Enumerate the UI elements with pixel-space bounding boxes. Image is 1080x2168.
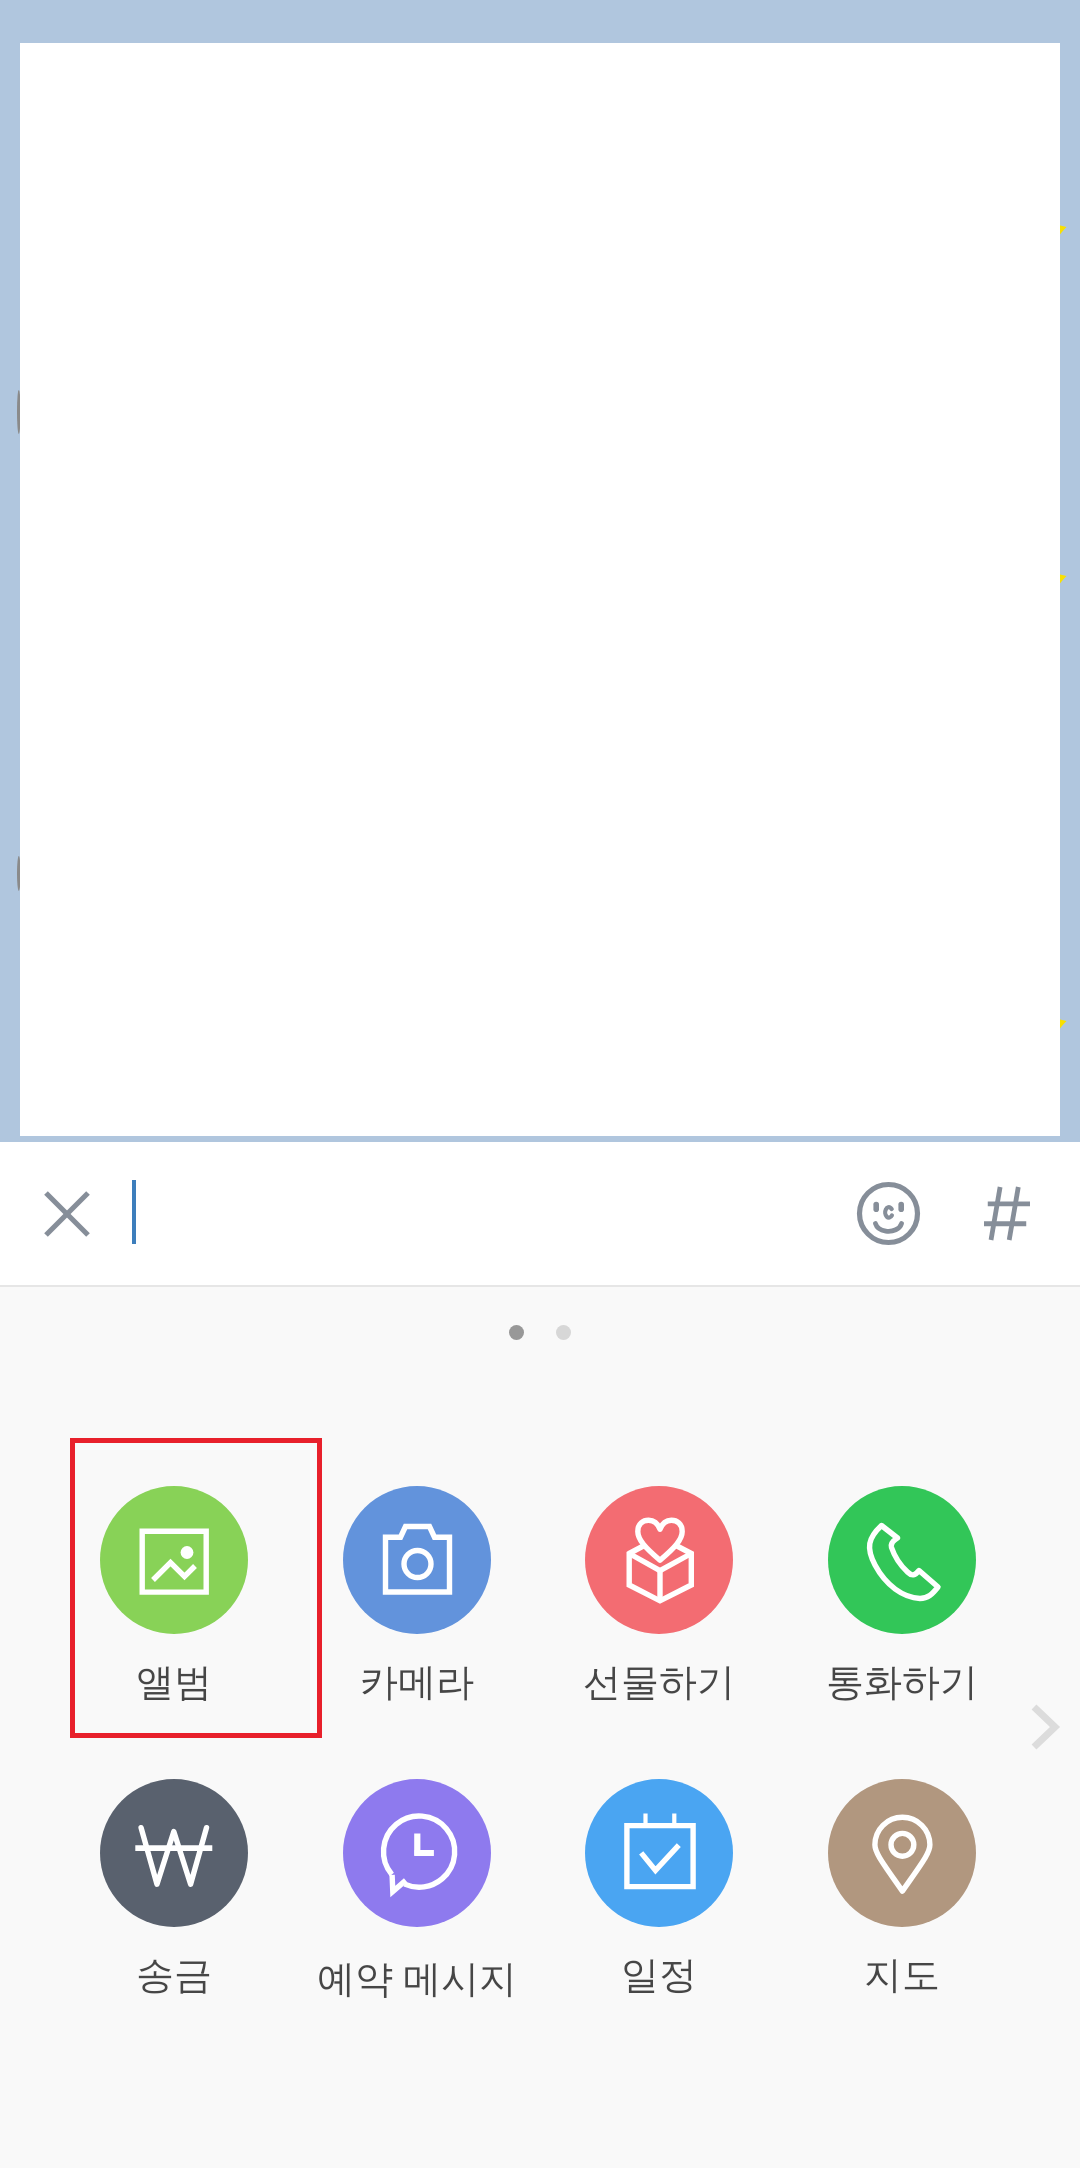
button[interactable]: 예약 메시지 [296,1779,538,2049]
staticText: 앨범 [136,1658,212,1706]
staticText: 일정 [621,1951,697,1999]
staticText: 송금 [136,1951,212,1999]
button[interactable]: 선물하기 [538,1486,780,1756]
button[interactable]: 카메라 [296,1486,538,1756]
button[interactable]: Next page [1010,1687,1078,1767]
staticText: 카메라 [360,1658,474,1706]
button[interactable]: 통화하기 [781,1486,1023,1756]
staticText: 통화하기 [826,1658,978,1706]
button[interactable]: 앨범 [53,1486,295,1756]
staticText: 예약 메시지 [317,1951,517,2003]
button[interactable]: Close [7,1142,127,1285]
staticText: 선물하기 [583,1658,735,1706]
staticText: 지도 [864,1951,940,1999]
button[interactable]: Hashtag [947,1142,1067,1285]
button[interactable]: 송금 [53,1779,295,2049]
button[interactable]: 일정 [538,1779,780,2049]
button[interactable]: 지도 [781,1779,1023,2049]
button[interactable]: Emoticon [828,1142,948,1285]
